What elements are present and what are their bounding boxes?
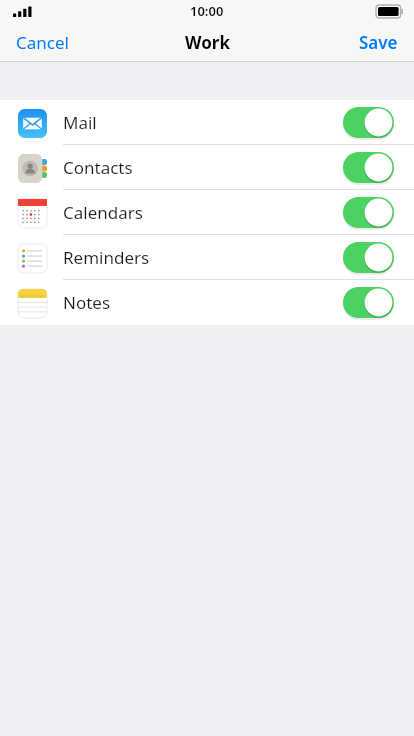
staticText: Work xyxy=(185,31,230,54)
staticText: Save xyxy=(359,31,398,54)
button[interactable]: Reminders xyxy=(0,235,414,280)
staticText: Notes xyxy=(63,291,111,314)
staticText: Contacts xyxy=(63,156,133,179)
staticText: Reminders xyxy=(63,246,150,269)
button[interactable]: Contacts xyxy=(0,145,414,190)
staticText: 10:00 xyxy=(190,2,224,20)
staticText: Cancel xyxy=(16,31,69,54)
button[interactable]: Cancel xyxy=(0,25,85,60)
staticText: Calendars xyxy=(63,201,143,224)
button[interactable]: Calendars xyxy=(0,190,414,235)
staticText: Mail xyxy=(63,111,97,134)
button[interactable]: Notes xyxy=(0,280,414,325)
button[interactable]: Mail xyxy=(0,100,414,145)
button[interactable]: Save xyxy=(343,25,414,60)
